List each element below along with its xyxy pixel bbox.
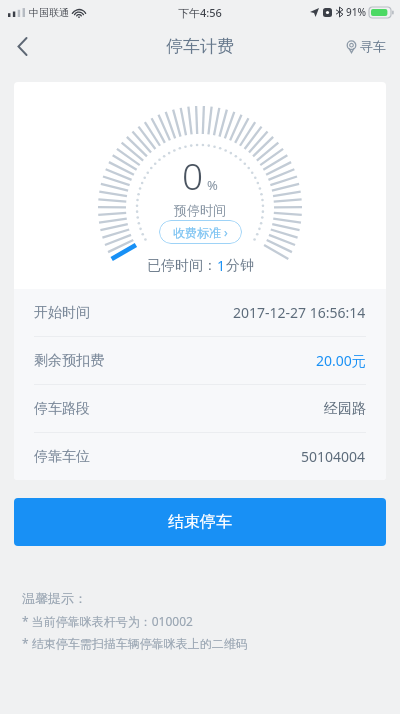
button[interactable]: 开始时间 bbox=[14, 289, 386, 336]
staticText: * 结束停车需扫描车辆停靠咪表上的二维码 bbox=[22, 635, 248, 651]
staticText: 停车计费 bbox=[166, 36, 234, 57]
staticText: 2017-12-27 16:56:14 bbox=[233, 303, 366, 322]
staticText: 停靠车位 bbox=[34, 448, 90, 466]
staticText: 下午4:56 bbox=[178, 5, 222, 20]
staticText: 20.00元 bbox=[316, 351, 366, 370]
staticText: * 当前停靠咪表杆号为：010002 bbox=[22, 613, 193, 629]
staticText: 中国联通 bbox=[29, 6, 69, 19]
staticText: 经园路 bbox=[324, 400, 366, 418]
button[interactable]: 停车路段 bbox=[14, 385, 386, 432]
staticText: 温馨提示： bbox=[22, 590, 87, 606]
staticText: 50104004 bbox=[301, 447, 366, 466]
button[interactable]: 结束停车 bbox=[14, 498, 386, 546]
staticText: 开始时间 bbox=[34, 304, 90, 322]
button[interactable]: 停靠车位 bbox=[14, 433, 386, 480]
staticText: 1 bbox=[217, 256, 226, 275]
staticText: 分钟 bbox=[226, 257, 254, 275]
staticText: 已停时间： bbox=[147, 257, 217, 275]
button[interactable]: 剩余预扣费 bbox=[14, 337, 386, 384]
staticText: 预停时间 bbox=[174, 202, 226, 218]
button[interactable]: 寻车 bbox=[345, 24, 386, 68]
staticText: 停车路段 bbox=[34, 400, 90, 418]
staticText: 0 bbox=[182, 150, 204, 200]
staticText: 收费标准 › bbox=[173, 224, 228, 240]
staticText: 91% bbox=[346, 5, 366, 19]
staticText: % bbox=[207, 176, 218, 194]
staticText: 结束停车 bbox=[168, 512, 232, 532]
button[interactable]: 收费标准 › bbox=[159, 220, 242, 244]
staticText: 剩余预扣费 bbox=[34, 352, 104, 370]
staticText: 寻车 bbox=[360, 38, 386, 54]
button[interactable]: Back bbox=[0, 24, 44, 68]
